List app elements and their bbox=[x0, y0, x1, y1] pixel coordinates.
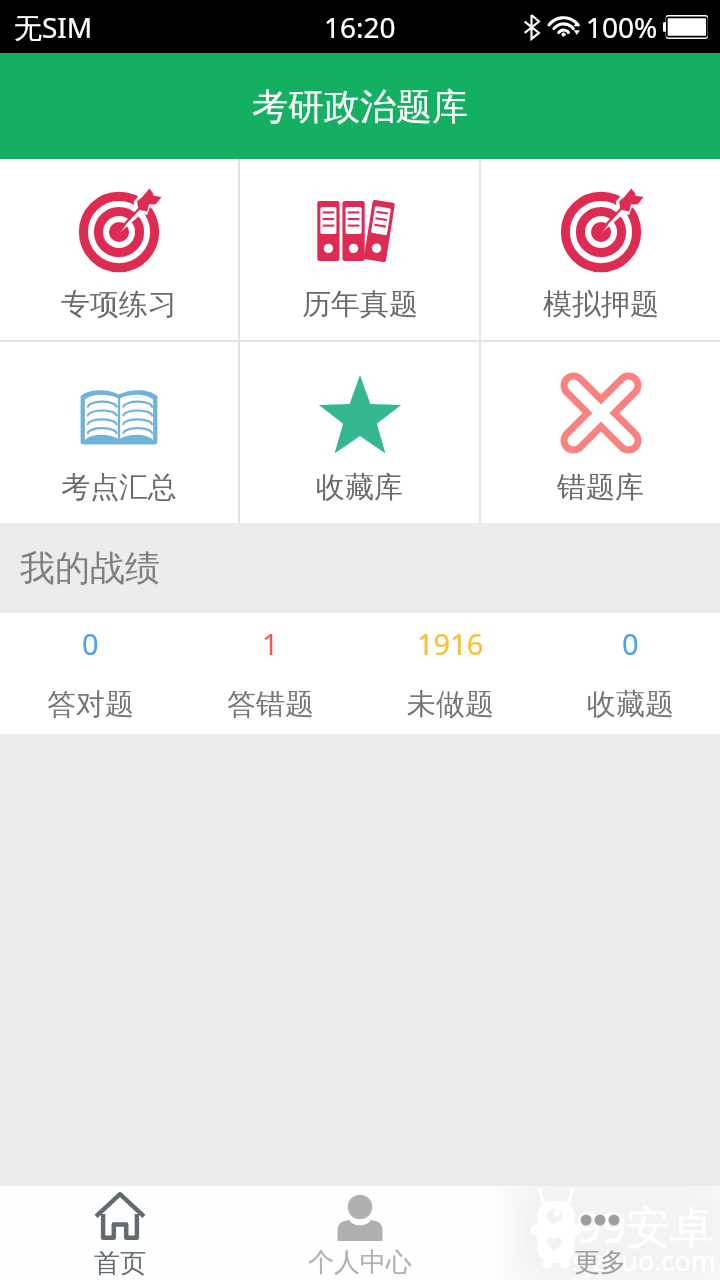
staticText: 模拟押题 bbox=[543, 286, 659, 323]
button[interactable]: Home bbox=[0, 1186, 240, 1280]
staticText: 无SIM bbox=[14, 8, 93, 46]
button[interactable]: 0 bbox=[540, 613, 720, 734]
staticText: 未做题 bbox=[407, 686, 494, 723]
staticText: 答对题 bbox=[47, 686, 134, 723]
button[interactable]: 收藏库 bbox=[240, 342, 479, 523]
button[interactable]: 模拟押题 bbox=[481, 159, 720, 340]
staticText: 0 bbox=[82, 624, 99, 663]
staticText: 考研政治题库 bbox=[252, 84, 468, 129]
button[interactable]: 1916 bbox=[360, 613, 540, 734]
staticText: 1916 bbox=[417, 624, 484, 663]
staticText: 专项练习 bbox=[61, 286, 177, 323]
button[interactable]: More bbox=[480, 1186, 720, 1280]
staticText: 我的战绩 bbox=[20, 546, 160, 590]
button[interactable]: Profile bbox=[240, 1186, 480, 1280]
button[interactable]: 专项练习 bbox=[0, 159, 238, 340]
staticText: sjzhuo.com bbox=[572, 1242, 717, 1279]
staticText: 收藏库 bbox=[316, 469, 403, 506]
staticText: 历年真题 bbox=[302, 286, 418, 323]
staticText: 考点汇总 bbox=[61, 469, 177, 506]
button[interactable]: 考点汇总 bbox=[0, 342, 238, 523]
button[interactable]: 历年真题 bbox=[240, 159, 479, 340]
staticText: 100% bbox=[586, 8, 658, 46]
staticText: 收藏题 bbox=[587, 686, 674, 723]
button[interactable]: 0 bbox=[0, 613, 180, 734]
staticText: 更多 bbox=[574, 1246, 626, 1279]
staticText: 99安卓 bbox=[576, 1196, 715, 1256]
staticText: 首页 bbox=[94, 1247, 146, 1280]
staticText: 1 bbox=[262, 624, 279, 663]
button[interactable]: 1 bbox=[180, 613, 360, 734]
staticText: 16:20 bbox=[324, 8, 396, 46]
staticText: 0 bbox=[622, 624, 639, 663]
staticText: 个人中心 bbox=[308, 1246, 412, 1279]
staticText: 答错题 bbox=[227, 686, 314, 723]
staticText: 错题库 bbox=[557, 469, 644, 506]
button[interactable]: 错题库 bbox=[481, 342, 720, 523]
